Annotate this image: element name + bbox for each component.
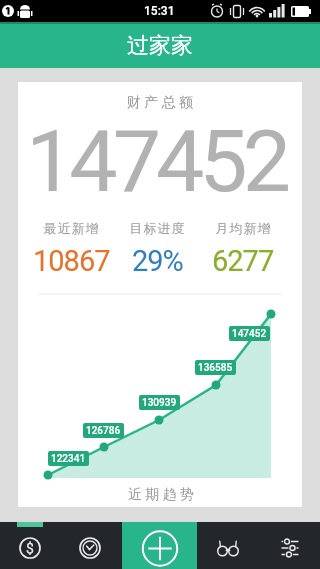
staticText: 136585 <box>198 362 233 374</box>
staticText: 近期趋势 <box>128 486 198 504</box>
staticText: 目标进度 <box>129 220 185 236</box>
staticText: 财产总额 <box>127 94 197 112</box>
staticText: 130939 <box>142 397 177 409</box>
staticText: $ <box>26 540 34 556</box>
staticText: 最近新增 <box>43 220 99 236</box>
staticText: 15:31 <box>144 4 175 18</box>
button[interactable] <box>0 522 61 569</box>
staticText: 6277 <box>212 244 274 278</box>
button[interactable] <box>122 522 197 569</box>
button[interactable] <box>197 522 258 569</box>
staticText: 10867 <box>33 244 110 278</box>
staticText: 过家家 <box>127 32 193 60</box>
staticText: 月均新增 <box>215 220 271 236</box>
button[interactable] <box>61 522 122 569</box>
button[interactable] <box>258 522 320 569</box>
staticText: 147452 <box>26 111 286 212</box>
staticText: 122341 <box>51 453 86 465</box>
staticText: 126786 <box>86 425 121 437</box>
staticText: 147452 <box>232 328 267 340</box>
staticText: 29% <box>132 244 183 278</box>
